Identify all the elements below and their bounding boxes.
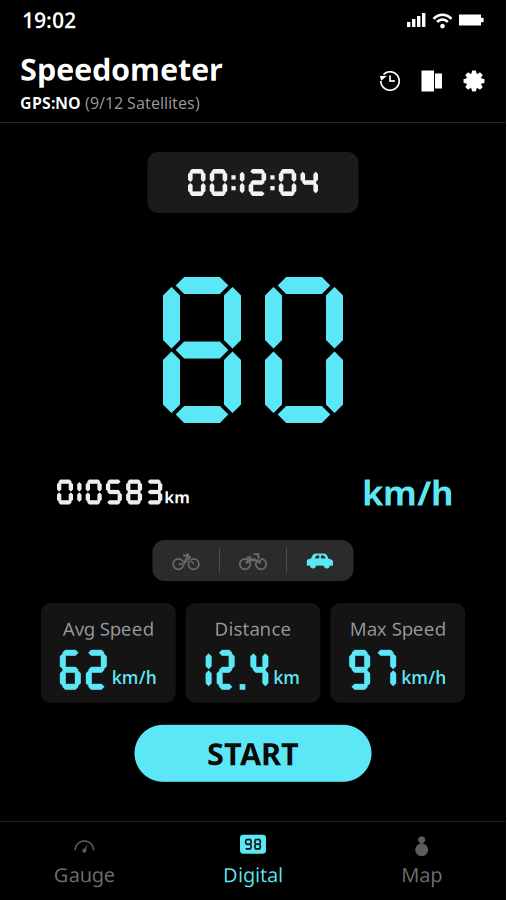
button[interactable]: Car	[287, 540, 353, 581]
button[interactable]: Digital	[169, 834, 337, 888]
staticText: km	[273, 666, 300, 689]
staticText: START	[207, 733, 299, 774]
staticText: km/h	[401, 666, 446, 689]
staticText: Distance	[214, 616, 291, 641]
staticText: (9/12 Satellites)	[85, 92, 200, 113]
button[interactable]: Settings	[462, 68, 486, 93]
button[interactable]: START	[134, 725, 371, 782]
staticText: 19:02	[22, 6, 76, 34]
staticText: km/h	[362, 469, 454, 515]
staticText: Digital	[223, 861, 283, 888]
button[interactable]: Motorcycle	[220, 540, 286, 581]
button[interactable]: History	[378, 68, 402, 93]
staticText: GPS:NO	[20, 92, 81, 113]
staticText: km/h	[112, 666, 157, 689]
staticText: Max Speed	[350, 616, 446, 641]
staticText: Gauge	[54, 861, 115, 888]
button[interactable]: Gauge	[0, 834, 169, 888]
staticText: Speedometer	[20, 48, 223, 89]
button[interactable]: Units	[420, 68, 444, 93]
staticText: Avg Speed	[63, 616, 154, 641]
button[interactable]: Bicycle	[153, 540, 219, 581]
staticText: km	[164, 486, 190, 508]
staticText: Map	[401, 861, 442, 888]
button[interactable]: Map	[337, 834, 506, 888]
